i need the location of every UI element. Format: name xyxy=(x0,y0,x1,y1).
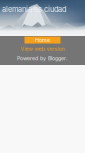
staticText: Powered by Blogger. xyxy=(17,55,68,61)
staticText: View web version xyxy=(20,45,64,52)
button[interactable]: Home xyxy=(24,36,60,43)
staticText: Home xyxy=(35,37,50,43)
button[interactable]: View web version xyxy=(20,45,64,52)
staticText: alemania es ciudad xyxy=(2,5,66,14)
